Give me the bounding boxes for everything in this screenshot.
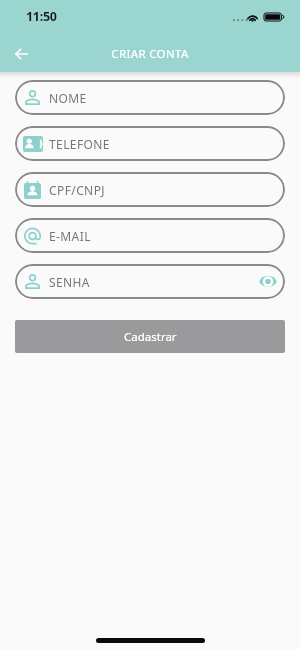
staticText: 11:50 xyxy=(26,8,57,25)
staticText: SENHA xyxy=(49,274,90,290)
button[interactable]: Back xyxy=(7,40,35,68)
button[interactable]: Cadastrar xyxy=(15,320,285,353)
staticText: E-MAIL xyxy=(49,228,91,244)
staticText: NOME xyxy=(49,90,87,106)
staticText: CRIAR CONTA xyxy=(111,46,189,62)
button[interactable]: E-MAIL xyxy=(15,218,285,253)
staticText: Cadastrar xyxy=(124,329,177,345)
button[interactable]: TELEFONE xyxy=(15,126,285,161)
button[interactable]: SENHA xyxy=(15,264,285,299)
button[interactable]: NOME xyxy=(15,80,285,115)
staticText: TELEFONE xyxy=(49,136,110,152)
button[interactable]: CPF/CNPJ xyxy=(15,172,285,207)
staticText: CPF/CNPJ xyxy=(49,182,105,198)
button[interactable]: Show password xyxy=(259,275,277,288)
